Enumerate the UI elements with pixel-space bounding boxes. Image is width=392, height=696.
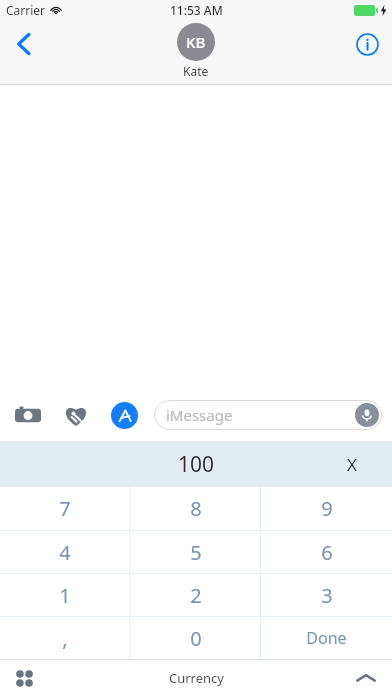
- button[interactable]: 4: [0, 531, 130, 573]
- button[interactable]: Back: [4, 24, 44, 64]
- button[interactable]: ,: [0, 617, 130, 659]
- staticText: 9: [321, 495, 333, 522]
- button[interactable]: Apps: [6, 660, 42, 696]
- staticText: 5: [190, 539, 202, 566]
- button[interactable]: Done: [261, 617, 392, 659]
- staticText: KB: [186, 32, 206, 52]
- button[interactable]: 0: [130, 617, 261, 659]
- button[interactable]: 5: [130, 531, 261, 573]
- staticText: Kate: [183, 63, 209, 79]
- staticText: 100: [178, 450, 215, 479]
- staticText: ,: [62, 625, 68, 652]
- button[interactable]: Details: [347, 24, 387, 64]
- staticText: 0: [190, 625, 202, 652]
- button[interactable]: Camera: [10, 397, 46, 433]
- staticText: 1: [59, 582, 71, 609]
- staticText: 6: [321, 539, 333, 566]
- button[interactable]: 6: [261, 531, 392, 573]
- staticText: Carrier: [6, 2, 46, 18]
- button[interactable]: Expand: [348, 660, 384, 696]
- button[interactable]: Digital Touch: [58, 397, 94, 433]
- staticText: 8: [190, 495, 202, 522]
- button[interactable]: 8: [130, 487, 261, 530]
- staticText: 11:53 AM: [170, 2, 223, 18]
- button[interactable]: 9: [261, 487, 392, 530]
- staticText: Done: [306, 627, 347, 649]
- button[interactable]: App Store: [106, 397, 142, 433]
- button[interactable]: iMessage: [154, 400, 382, 430]
- staticText: Currency: [169, 669, 224, 687]
- staticText: 7: [59, 495, 71, 522]
- button[interactable]: KB: [177, 23, 215, 79]
- staticText: 3: [321, 582, 333, 609]
- button[interactable]: 3: [261, 574, 392, 616]
- staticText: 2: [190, 582, 202, 609]
- staticText: X: [347, 453, 357, 476]
- staticText: iMessage: [166, 405, 233, 425]
- button[interactable]: Clear: [332, 444, 372, 484]
- button[interactable]: 1: [0, 574, 130, 616]
- button[interactable]: Record audio: [355, 403, 379, 427]
- staticText: 4: [59, 539, 71, 566]
- button[interactable]: 2: [130, 574, 261, 616]
- button[interactable]: 7: [0, 487, 130, 530]
